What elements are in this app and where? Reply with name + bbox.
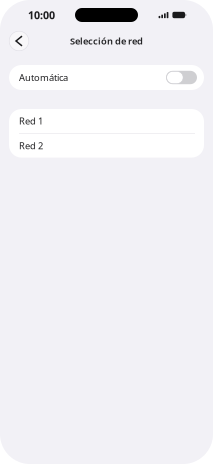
button[interactable]: Red 2	[9, 134, 204, 158]
button[interactable]: Automática	[9, 65, 204, 90]
staticText: Automática	[19, 71, 68, 84]
staticText: Selección de red	[70, 35, 143, 47]
staticText: 10:00	[28, 8, 55, 22]
button[interactable]: Atrás	[6, 28, 32, 54]
staticText: Red 2	[19, 139, 43, 152]
staticText: Red 1	[19, 115, 43, 127]
button[interactable]: Red 1	[9, 109, 204, 133]
